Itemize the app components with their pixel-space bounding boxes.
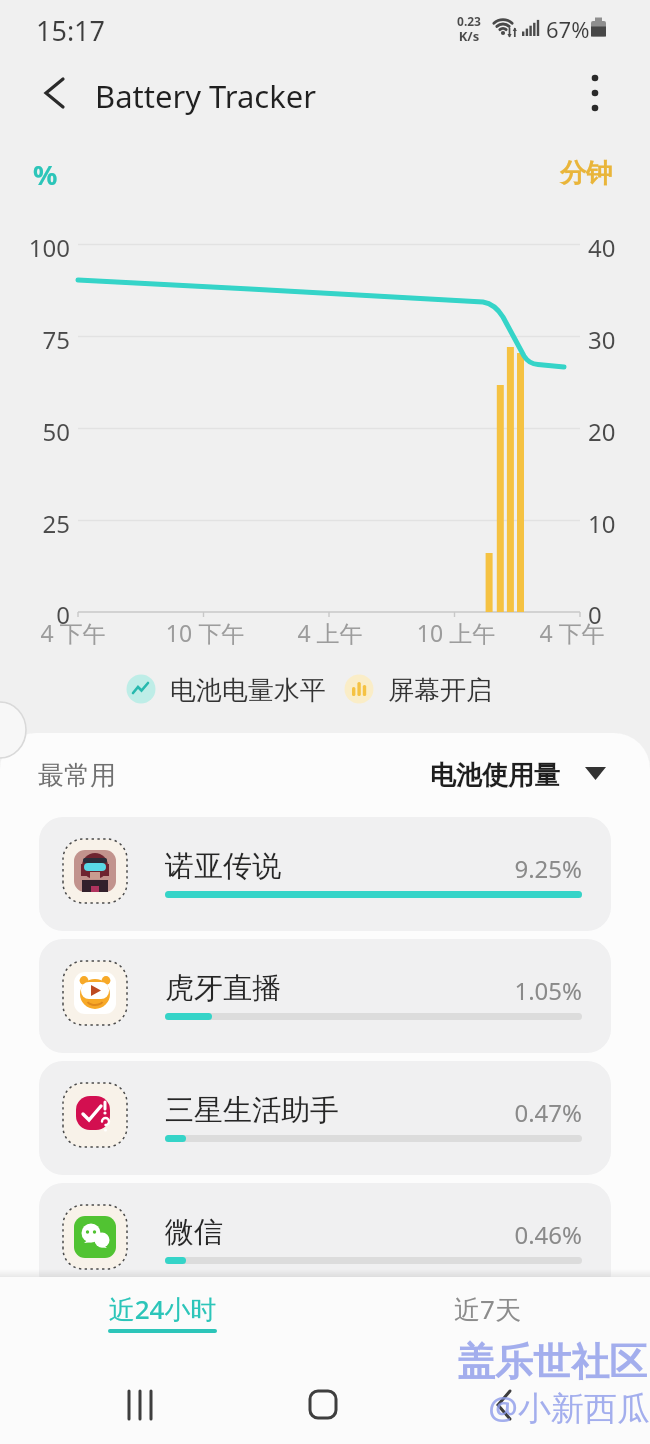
staticText: 4 下午 — [38, 617, 108, 648]
staticText: 4 上午 — [295, 617, 365, 648]
staticText: 75 — [20, 323, 70, 356]
staticText: 近7天 — [385, 1291, 590, 1327]
button[interactable]: 虎牙直播 — [39, 939, 611, 1053]
staticText: 4 下午 — [537, 617, 607, 648]
button[interactable] — [572, 68, 620, 118]
staticText: 盖乐世社区 — [395, 1338, 647, 1386]
staticText: 10 下午 — [165, 617, 245, 648]
button[interactable]: 诺亚传说 — [39, 817, 611, 931]
staticText: 0.23 — [452, 13, 486, 29]
staticText: 虎牙直播 — [165, 970, 281, 1007]
staticText: 15:17 — [36, 12, 106, 49]
button[interactable]: 近7天 — [385, 1283, 590, 1343]
staticText: % — [33, 156, 58, 193]
button[interactable] — [30, 68, 80, 118]
button[interactable]: 三星生活助手 — [39, 1061, 611, 1175]
staticText: 9.25% — [382, 852, 582, 885]
staticText: 100 — [20, 231, 70, 264]
staticText: K/s — [452, 27, 486, 45]
staticText: 微信 — [165, 1214, 223, 1251]
staticText: 近24小时 — [60, 1291, 265, 1327]
staticText: 屏幕开启 — [388, 674, 492, 707]
staticText: 10 上午 — [416, 617, 496, 648]
staticText: 最常用 — [38, 759, 116, 792]
button[interactable]: 电池使用量 — [430, 752, 620, 796]
staticText: 50 — [20, 415, 70, 448]
staticText: 分钟 — [560, 157, 612, 190]
staticText: 电池电量水平 — [170, 674, 326, 707]
button[interactable] — [100, 1380, 184, 1430]
staticText: 20 — [588, 415, 616, 448]
button[interactable] — [281, 1380, 365, 1430]
staticText: 三星生活助手 — [165, 1092, 339, 1129]
button[interactable]: 微信 — [39, 1183, 611, 1297]
button[interactable]: 近24小时 — [60, 1283, 265, 1343]
button[interactable] — [462, 1380, 546, 1430]
staticText: Battery Tracker — [95, 75, 317, 117]
staticText: @小新西瓜 — [428, 1385, 650, 1430]
staticText: 0 — [588, 598, 602, 631]
staticText: 1.05% — [382, 974, 582, 1007]
staticText: 30 — [588, 323, 616, 356]
staticText: 电池使用量 — [430, 759, 560, 792]
staticText: 0.47% — [382, 1096, 582, 1129]
staticText: 40 — [588, 231, 616, 264]
staticText: 0.46% — [382, 1218, 582, 1251]
staticText: 诺亚传说 — [165, 848, 281, 885]
staticText: 0 — [20, 598, 70, 631]
staticText: 10 — [588, 507, 616, 540]
staticText: 67% — [546, 14, 590, 44]
staticText: 25 — [20, 507, 70, 540]
